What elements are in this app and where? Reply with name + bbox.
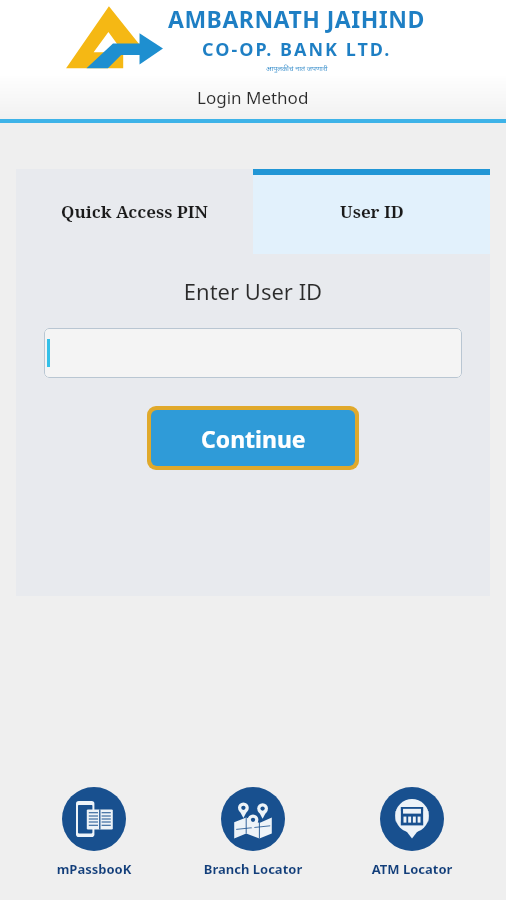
staticText: CO-OP. BANK LTD. — [202, 37, 392, 62]
staticText: Continue — [201, 423, 306, 454]
button[interactable]: Branch Locator — [178, 783, 328, 882]
button[interactable]: Continue — [151, 410, 355, 466]
button[interactable]: mPassbook — [19, 783, 169, 882]
staticText: ATM Locator — [337, 860, 487, 878]
button[interactable]: ATM Locator — [337, 783, 487, 882]
staticText: AMBARNATH JAIHIND — [168, 3, 425, 34]
button[interactable] — [44, 328, 462, 378]
staticText: User ID — [340, 200, 404, 223]
staticText: Enter User ID — [16, 276, 490, 306]
staticText: Login Method — [197, 86, 309, 109]
button[interactable]: User ID — [253, 169, 490, 254]
staticText: Branch Locator — [178, 860, 328, 878]
staticText: Quick Access PIN — [61, 200, 208, 223]
staticText: mPassbooK — [19, 860, 169, 878]
button[interactable]: Quick Access PIN — [16, 169, 253, 254]
staticText: आपुलकीचं नातं जपणारी — [266, 64, 328, 74]
